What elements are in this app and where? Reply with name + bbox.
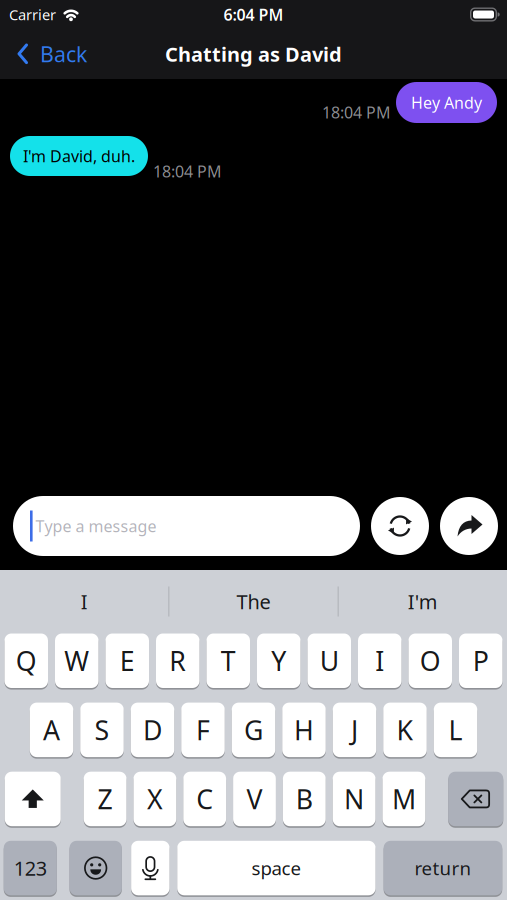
staticText: E (120, 643, 135, 678)
button[interactable]: J (333, 703, 376, 757)
staticText: The (236, 588, 270, 615)
staticText: V (246, 781, 262, 817)
staticText: C (196, 781, 213, 817)
button[interactable]: S (80, 703, 124, 757)
button[interactable]: Emoji (69, 841, 122, 895)
button[interactable]: Dictate (131, 841, 169, 895)
button[interactable]: H (282, 703, 326, 757)
staticText: return (414, 856, 471, 880)
button[interactable]: W (55, 633, 98, 688)
staticText: Y (271, 643, 286, 678)
button[interactable]: L (434, 703, 477, 757)
staticText: I (375, 643, 384, 678)
button[interactable]: M (382, 772, 425, 826)
staticText: K (396, 712, 413, 747)
button[interactable]: return (384, 841, 502, 895)
button[interactable]: space (177, 841, 375, 895)
staticText: J (351, 712, 358, 747)
staticText: I (81, 588, 88, 615)
staticText: Back (40, 40, 87, 68)
button[interactable]: I (358, 633, 401, 688)
button[interactable]: Send (440, 497, 498, 555)
staticText: N (344, 781, 364, 817)
staticText: 6:04 PM (223, 4, 283, 25)
staticText: T (221, 643, 236, 678)
staticText: U (320, 643, 339, 678)
button[interactable]: 123 (4, 841, 57, 895)
button[interactable]: U (307, 633, 351, 688)
button[interactable]: F (181, 703, 225, 757)
staticText: O (420, 643, 441, 678)
button[interactable]: Shift (5, 772, 61, 826)
staticText: L (448, 712, 462, 747)
button[interactable]: Regenerate (371, 497, 429, 555)
staticText: 18:04 PM (153, 161, 222, 182)
button[interactable]: R (156, 633, 199, 688)
button[interactable]: O (408, 633, 452, 688)
staticText: A (43, 712, 60, 747)
staticText: space (251, 856, 301, 880)
button[interactable]: T (206, 633, 250, 688)
staticText: B (296, 781, 313, 817)
staticText: P (473, 643, 489, 678)
staticText: W (64, 643, 89, 678)
button[interactable]: D (131, 703, 174, 757)
staticText: S (94, 712, 109, 747)
button[interactable]: K (383, 703, 427, 757)
staticText: G (244, 712, 263, 747)
staticText: X (147, 781, 163, 817)
staticText: F (196, 712, 210, 747)
staticText: I'm David, duh. (23, 145, 135, 167)
staticText: Type a message (36, 515, 157, 537)
button[interactable]: P (459, 633, 502, 688)
button[interactable]: V (233, 772, 276, 826)
staticText: R (169, 643, 186, 678)
button[interactable]: Q (4, 633, 48, 688)
button[interactable]: Y (257, 633, 300, 688)
staticText: D (143, 712, 162, 747)
button[interactable]: X (133, 772, 176, 826)
staticText: Carrier (9, 5, 56, 24)
button[interactable]: Delete (448, 772, 503, 826)
button[interactable]: C (183, 772, 226, 826)
staticText: Q (16, 643, 37, 678)
button[interactable]: A (30, 703, 73, 757)
button[interactable]: N (333, 772, 375, 826)
staticText: H (294, 712, 314, 747)
staticText: Chatting as David (165, 41, 342, 67)
staticText: 123 (14, 855, 47, 881)
staticText: Z (98, 781, 113, 817)
button[interactable]: G (232, 703, 275, 757)
button[interactable]: I'm (339, 570, 507, 633)
staticText: I'm (408, 588, 438, 615)
staticText: 18:04 PM (322, 102, 391, 123)
button[interactable]: Back (0, 40, 87, 68)
staticText: M (392, 781, 416, 817)
button[interactable]: Type a message (13, 496, 360, 556)
button[interactable]: The (169, 570, 338, 633)
staticText: Hey Andy (411, 92, 482, 113)
button[interactable]: B (283, 772, 326, 826)
button[interactable]: E (105, 633, 149, 688)
button[interactable]: Z (84, 772, 126, 826)
button[interactable]: I (0, 570, 168, 633)
